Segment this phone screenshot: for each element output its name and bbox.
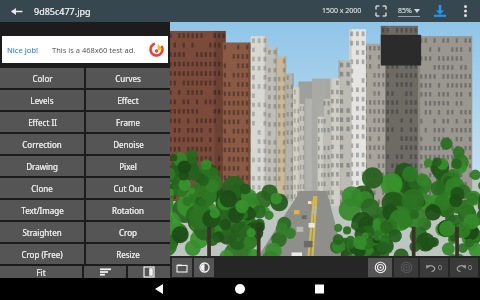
staticText: Fit — [36, 267, 46, 278]
button[interactable]: More options — [456, 2, 474, 20]
staticText: Levels — [30, 95, 54, 106]
staticText: Correction — [22, 139, 62, 150]
staticText: Text/Image — [21, 205, 64, 216]
button[interactable]: Undo — [420, 258, 448, 277]
staticText: Frame — [116, 117, 140, 128]
staticText: 85% — [398, 6, 412, 16]
button[interactable]: 85% — [398, 6, 420, 17]
button[interactable]: Revert — [394, 258, 418, 277]
button[interactable]: Pixel — [86, 156, 170, 176]
button[interactable]: Crop (Free) — [0, 244, 84, 264]
button[interactable]: Frame — [86, 112, 170, 132]
staticText: Effect II — [28, 117, 57, 128]
button[interactable]: Apply — [368, 258, 392, 277]
staticText: Nice job! — [7, 45, 39, 55]
staticText: Straighten — [22, 227, 62, 238]
button[interactable]: Denoise — [86, 134, 170, 154]
staticText: Crop — [119, 227, 137, 238]
staticText: Resize — [116, 249, 140, 260]
button[interactable]: Split view — [128, 266, 170, 278]
button[interactable]: Redo — [450, 258, 478, 277]
button[interactable]: Drawing — [0, 156, 84, 176]
button[interactable]: Align — [84, 266, 126, 278]
staticText: Pixel — [119, 161, 137, 172]
button[interactable]: Effect II — [0, 112, 84, 132]
button[interactable]: Resize — [86, 244, 170, 264]
staticText: Clone — [31, 183, 53, 194]
staticText: Denoise — [113, 139, 144, 150]
staticText: Curves — [115, 73, 141, 84]
button[interactable]: Info — [194, 258, 214, 277]
staticText: This is a 468x60 test ad. — [52, 45, 136, 55]
staticText: Drawing — [26, 161, 58, 172]
button[interactable]: Straighten — [0, 222, 84, 242]
staticText: 0 — [438, 263, 443, 273]
staticText: 0 — [468, 263, 473, 273]
staticText: Effect — [117, 95, 139, 106]
button[interactable]: Correction — [0, 134, 84, 154]
staticText: Cut Out — [113, 183, 143, 194]
button[interactable]: Open file — [172, 258, 192, 277]
button[interactable]: Text/Image — [0, 200, 84, 220]
button[interactable]: Effect — [86, 90, 170, 110]
staticText: Rotation — [112, 205, 144, 216]
button[interactable]: Curves — [86, 68, 170, 88]
button[interactable]: Rotation — [86, 200, 170, 220]
staticText: Color — [32, 73, 53, 84]
staticText: Crop (Free) — [21, 249, 63, 260]
button[interactable]: Back — [6, 1, 26, 21]
button[interactable]: Cut Out — [86, 178, 170, 198]
button[interactable]: Nice job! — [2, 36, 168, 63]
button[interactable]: Levels — [0, 90, 84, 110]
button[interactable]: Clone — [0, 178, 84, 198]
button[interactable]: Crop — [86, 222, 170, 242]
button[interactable]: Color — [0, 68, 84, 88]
button[interactable]: Save — [430, 1, 450, 21]
staticText: 9d85c477.jpg — [34, 5, 91, 17]
button[interactable]: Fit — [0, 266, 82, 278]
button[interactable]: Fit to screen — [372, 2, 390, 20]
staticText: 1500 x 2000 — [322, 6, 362, 16]
